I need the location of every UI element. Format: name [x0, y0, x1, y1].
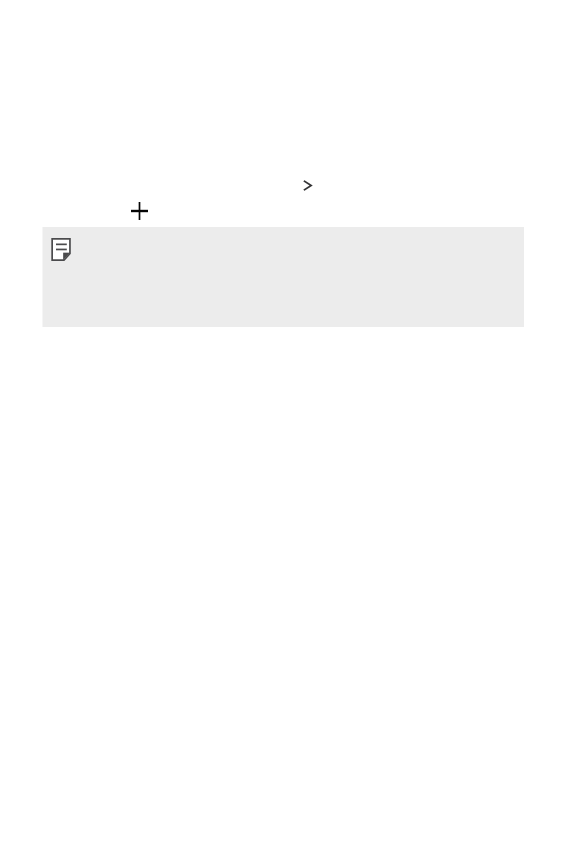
button[interactable]: New Note [131, 202, 148, 220]
button[interactable]: Show More [303, 180, 312, 191]
button[interactable]: Note [42, 227, 524, 327]
